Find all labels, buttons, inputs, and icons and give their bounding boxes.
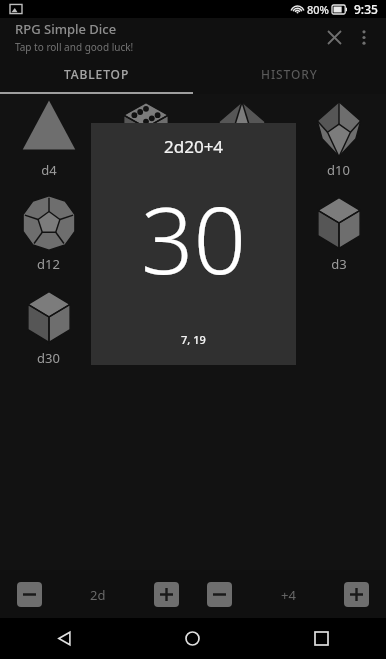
staticText: 2d20+4 (164, 135, 224, 158)
button[interactable]: Home (128, 618, 257, 659)
staticText: RPG Simple Dice (15, 20, 117, 38)
button[interactable]: 2d20+4 (91, 123, 296, 365)
button[interactable]: Roll d6 (97, 98, 194, 179)
button[interactable]: Recents (257, 618, 386, 659)
button[interactable]: Back (0, 618, 128, 659)
staticText: HISTORY (261, 66, 318, 82)
button[interactable]: Close (318, 21, 350, 53)
button[interactable]: TABLETOP (0, 56, 193, 92)
button[interactable]: Increase dice count (154, 582, 179, 607)
staticText: d4 (41, 161, 57, 179)
button[interactable]: Roll d3 (290, 192, 386, 273)
staticText: d10 (327, 161, 350, 179)
button[interactable]: Decrease modifier (207, 582, 232, 607)
staticText: d30 (37, 349, 60, 367)
button[interactable]: Roll d10 (290, 98, 386, 179)
staticText: TABLETOP (64, 66, 130, 82)
button[interactable]: Roll d4 (0, 98, 97, 179)
staticText: 7, 19 (181, 332, 206, 347)
staticText: +4 (281, 586, 296, 604)
staticText: Tap to roll and good luck! (15, 40, 134, 54)
button[interactable]: Roll d30 (0, 286, 97, 367)
button[interactable]: HISTORY (193, 56, 386, 92)
button[interactable]: Roll d12 (0, 192, 97, 273)
staticText: 2d (90, 586, 106, 604)
staticText: d3 (331, 255, 347, 273)
staticText: 80% (307, 2, 329, 17)
staticText: d12 (37, 255, 60, 273)
button[interactable]: Decrease dice count (17, 582, 42, 607)
staticText: 30 (141, 176, 247, 301)
button[interactable]: More options (348, 21, 380, 53)
staticText: 9:35 (354, 1, 378, 17)
button[interactable]: Increase modifier (344, 582, 369, 607)
button[interactable]: Roll d8 (193, 98, 290, 179)
